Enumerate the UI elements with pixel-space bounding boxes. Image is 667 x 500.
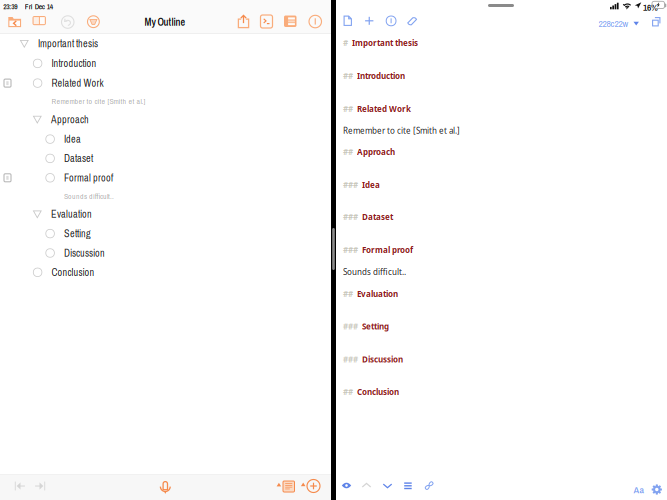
staticText: Approach xyxy=(51,113,89,126)
staticText: Related Work xyxy=(357,104,411,114)
button[interactable]: Info xyxy=(309,15,321,28)
staticText: Remember to cite [Smith et al.] xyxy=(343,125,460,136)
button[interactable]: Add xyxy=(364,16,374,25)
button[interactable]: Remember to cite [Smith et al.] xyxy=(0,92,331,110)
button[interactable]: Lines xyxy=(404,482,412,490)
button[interactable]: Formal proof xyxy=(0,169,331,187)
button[interactable]: Tag xyxy=(407,16,417,26)
button[interactable]: Setting xyxy=(0,225,331,243)
staticText: ### xyxy=(343,245,358,255)
staticText: 228c22w xyxy=(598,17,628,30)
staticText: Sounds difficult.. xyxy=(64,191,114,201)
staticText: 16% xyxy=(643,1,658,14)
button[interactable]: Dataset xyxy=(0,149,331,167)
button[interactable]: Filter xyxy=(87,16,99,28)
button[interactable]: Conclusion xyxy=(0,263,331,281)
button[interactable]: Dictate xyxy=(159,479,171,494)
button[interactable]: Related Work xyxy=(0,74,331,92)
staticText: ## xyxy=(343,71,353,81)
staticText: Introduction xyxy=(52,57,97,70)
staticText: Fri Dec 14 xyxy=(25,2,53,12)
staticText: ## xyxy=(343,387,353,397)
button[interactable]: Aa xyxy=(633,483,643,496)
staticText: Conclusion xyxy=(357,387,399,397)
button[interactable]: Discussion xyxy=(0,244,331,262)
staticText: Important thesis xyxy=(352,38,418,48)
staticText: ### xyxy=(343,212,358,222)
staticText: Discussion xyxy=(64,246,105,260)
button[interactable]: Sounds difficult.. xyxy=(0,187,331,205)
staticText: ### xyxy=(343,321,358,332)
staticText: Related Work xyxy=(52,76,104,90)
staticText: ## xyxy=(343,289,353,299)
staticText: Setting xyxy=(362,321,389,332)
button[interactable]: Important thesis xyxy=(0,35,331,53)
button[interactable]: Back to folder xyxy=(8,16,21,27)
staticText: # xyxy=(343,38,348,48)
button[interactable]: Preview xyxy=(341,481,351,489)
button[interactable]: Previous xyxy=(361,481,371,489)
button[interactable]: Indent xyxy=(34,480,45,492)
staticText: ### xyxy=(343,180,358,190)
button[interactable]: Next xyxy=(382,482,392,490)
button[interactable]: Info xyxy=(386,16,396,26)
button[interactable]: New note xyxy=(276,481,295,493)
button[interactable]: Split view xyxy=(652,17,660,26)
staticText: Conclusion xyxy=(52,265,95,279)
staticText: Setting xyxy=(64,227,91,240)
button[interactable]: Approach xyxy=(0,110,331,128)
button[interactable]: Toggle sidebar xyxy=(32,16,46,25)
button[interactable]: Evaluation xyxy=(0,205,331,223)
staticText: Dataset xyxy=(362,212,393,222)
staticText: ### xyxy=(343,354,358,365)
staticText: Dataset xyxy=(64,152,93,165)
staticText: ## xyxy=(343,104,353,114)
button[interactable]: Settings xyxy=(651,484,662,495)
button[interactable]: Outline style xyxy=(284,15,296,27)
staticText: Approach xyxy=(357,146,395,157)
button[interactable]: 228c22w xyxy=(598,17,639,30)
button[interactable]: Introduction xyxy=(0,54,331,72)
button[interactable]: Script xyxy=(260,15,272,28)
staticText: Formal proof xyxy=(64,171,113,185)
staticText: Formal proof xyxy=(362,245,413,255)
button[interactable]: Undo xyxy=(61,16,74,28)
staticText: My Outline xyxy=(144,15,185,29)
button[interactable]: Idea xyxy=(0,130,331,148)
staticText: Idea xyxy=(362,180,380,190)
staticText: Aa xyxy=(633,483,643,496)
staticText: Introduction xyxy=(357,71,405,81)
staticText: ## xyxy=(343,146,353,157)
button[interactable]: Outdent xyxy=(14,480,25,492)
button[interactable]: Link xyxy=(423,479,435,491)
staticText: Discussion xyxy=(362,354,403,365)
staticText: Evaluation xyxy=(357,289,398,299)
staticText: Sounds difficult.. xyxy=(343,267,406,277)
staticText: Evaluation xyxy=(51,207,92,221)
staticText: Remember to cite [Smith et al.] xyxy=(52,96,146,106)
staticText: Idea xyxy=(64,132,81,146)
staticText: Important thesis xyxy=(38,37,98,50)
button[interactable]: Add row xyxy=(301,479,320,493)
staticText: 23:39 xyxy=(3,2,17,12)
button[interactable]: New document xyxy=(343,15,352,26)
button[interactable]: Share xyxy=(237,14,249,28)
